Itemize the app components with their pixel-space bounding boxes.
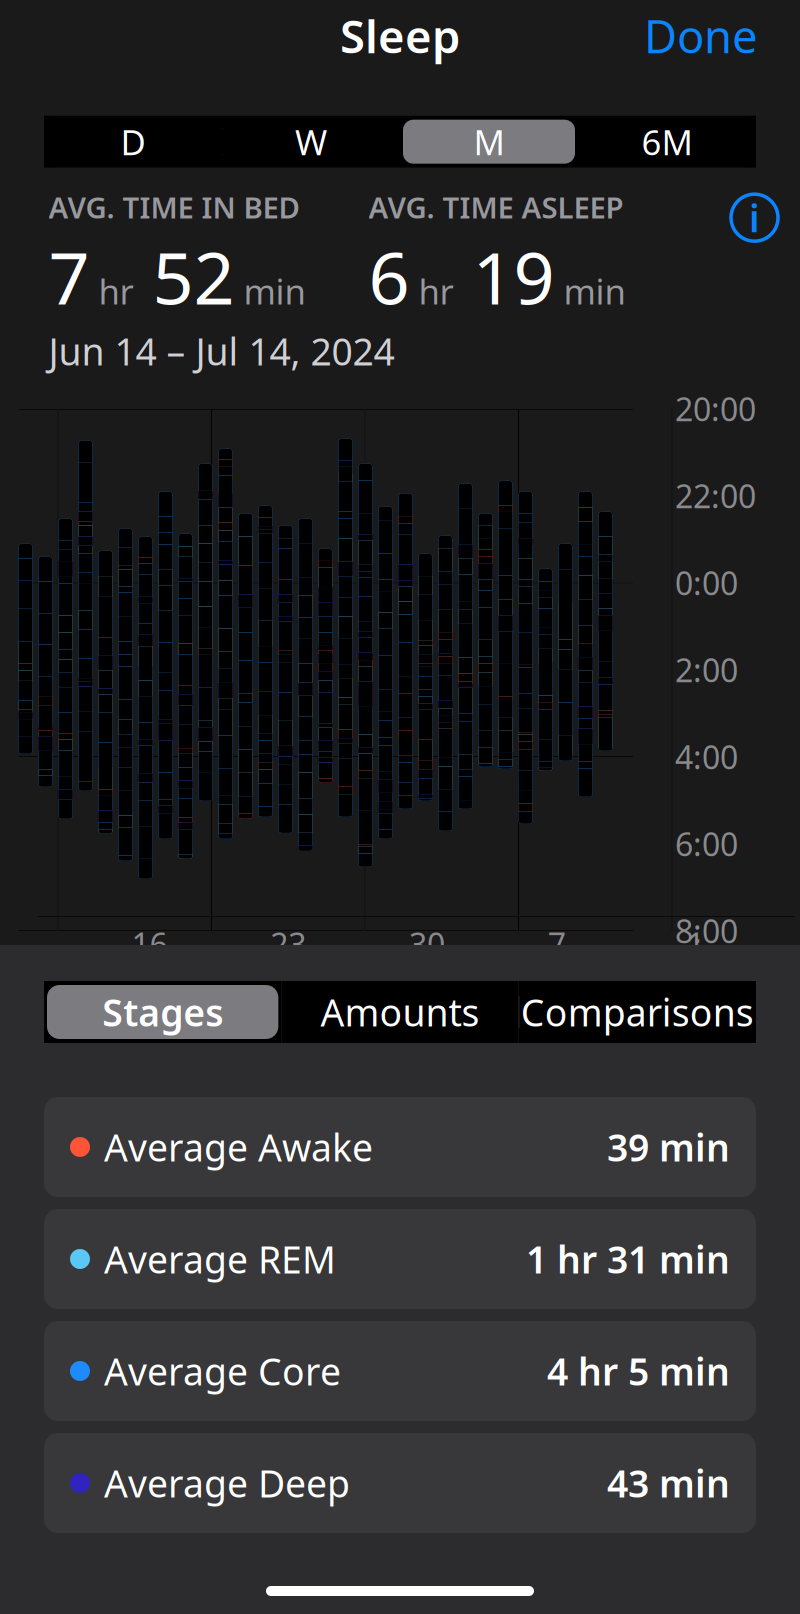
staticText: 8:00 xyxy=(675,910,738,952)
staticText: 4 hr 5 min xyxy=(547,1346,730,1396)
staticText: 6:00 xyxy=(675,823,738,865)
staticText: 1 hr 31 min xyxy=(526,1234,730,1284)
staticText: AVG. TIME ASLEEP xyxy=(368,188,623,227)
staticText: Stages xyxy=(102,987,223,1037)
staticText: 6 xyxy=(368,229,409,324)
button[interactable]: Average REM xyxy=(44,1209,756,1309)
staticText: AVG. TIME IN BED xyxy=(48,188,299,227)
staticText: Average REM xyxy=(104,1234,336,1284)
staticText: W xyxy=(295,119,327,165)
staticText: min xyxy=(554,268,625,314)
button[interactable]: Average Core xyxy=(44,1321,756,1421)
button[interactable]: About sleep data xyxy=(724,188,784,248)
button[interactable]: M xyxy=(400,116,578,168)
staticText: Amounts xyxy=(320,987,479,1037)
staticText: 1 xyxy=(686,923,704,965)
staticText: 0:00 xyxy=(675,562,738,604)
staticText: 6M xyxy=(641,119,692,165)
staticText: i xyxy=(749,193,760,242)
button[interactable]: D xyxy=(44,116,222,168)
staticText: 43 min xyxy=(607,1458,730,1508)
staticText: 39 min xyxy=(607,1122,730,1172)
button[interactable]: 6M xyxy=(578,116,756,168)
staticText: 30 xyxy=(409,923,445,965)
staticText: 52 xyxy=(133,229,234,324)
staticText: 2:00 xyxy=(675,649,738,691)
staticText: 23 xyxy=(270,923,306,965)
staticText: Average Deep xyxy=(104,1458,350,1508)
button[interactable]: W xyxy=(222,116,400,168)
staticText: Jun 14 – Jul 14, 2024 xyxy=(48,326,394,376)
staticText: 22:00 xyxy=(675,475,756,517)
staticText: Average Core xyxy=(104,1346,341,1396)
staticText: hr xyxy=(409,268,453,314)
staticText: Sleep xyxy=(340,6,460,66)
button[interactable]: Stages xyxy=(44,981,281,1043)
staticText: Done xyxy=(644,6,758,66)
staticText: Average Awake xyxy=(104,1122,373,1172)
staticText: 20:00 xyxy=(675,388,756,430)
staticText: M xyxy=(473,119,504,165)
button[interactable]: Done xyxy=(630,0,772,76)
staticText: 7 xyxy=(48,229,89,324)
staticText: 16 xyxy=(131,923,167,965)
staticText: D xyxy=(120,119,145,165)
staticText: 4:00 xyxy=(675,736,738,778)
button[interactable]: Average Awake xyxy=(44,1097,756,1197)
button[interactable]: Comparisons xyxy=(519,981,756,1043)
staticText: min xyxy=(234,268,305,314)
staticText: 7 xyxy=(548,923,566,965)
staticText: 19 xyxy=(453,229,554,324)
button[interactable]: Amounts xyxy=(281,981,519,1043)
staticText: Comparisons xyxy=(521,987,754,1037)
button[interactable]: Average Deep xyxy=(44,1433,756,1533)
staticText: hr xyxy=(89,268,133,314)
